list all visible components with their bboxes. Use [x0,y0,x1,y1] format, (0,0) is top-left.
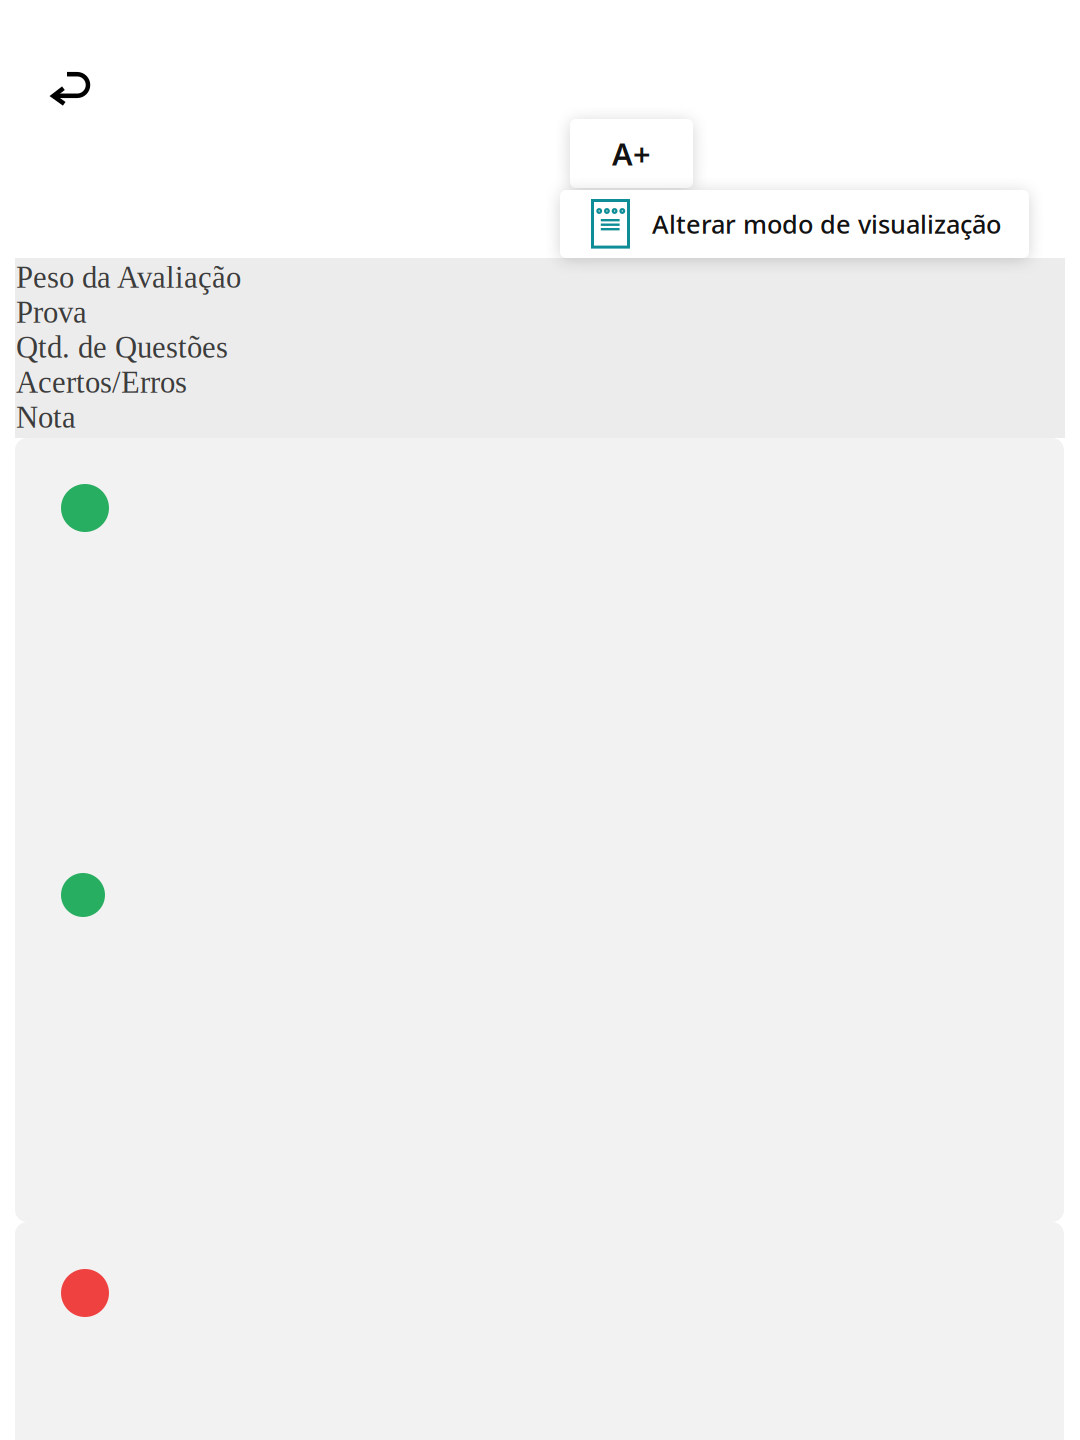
staticText: A+ [612,133,651,174]
button[interactable]: Voltar [42,59,102,119]
staticText: Prova [16,295,87,329]
staticText: Peso da Avaliação [16,260,241,294]
staticText: Alterar modo de visualização [652,207,1001,241]
button[interactable]: Alterar modo de visualização [560,190,1029,258]
staticText: Acertos/Erros [16,365,187,399]
button[interactable]: A+ [570,119,693,188]
staticText: Nota [16,400,76,434]
button[interactable] [15,1222,1064,1440]
button[interactable] [15,438,1064,825]
staticText: Qtd. de Questões [16,330,228,364]
button[interactable] [15,825,1064,1222]
